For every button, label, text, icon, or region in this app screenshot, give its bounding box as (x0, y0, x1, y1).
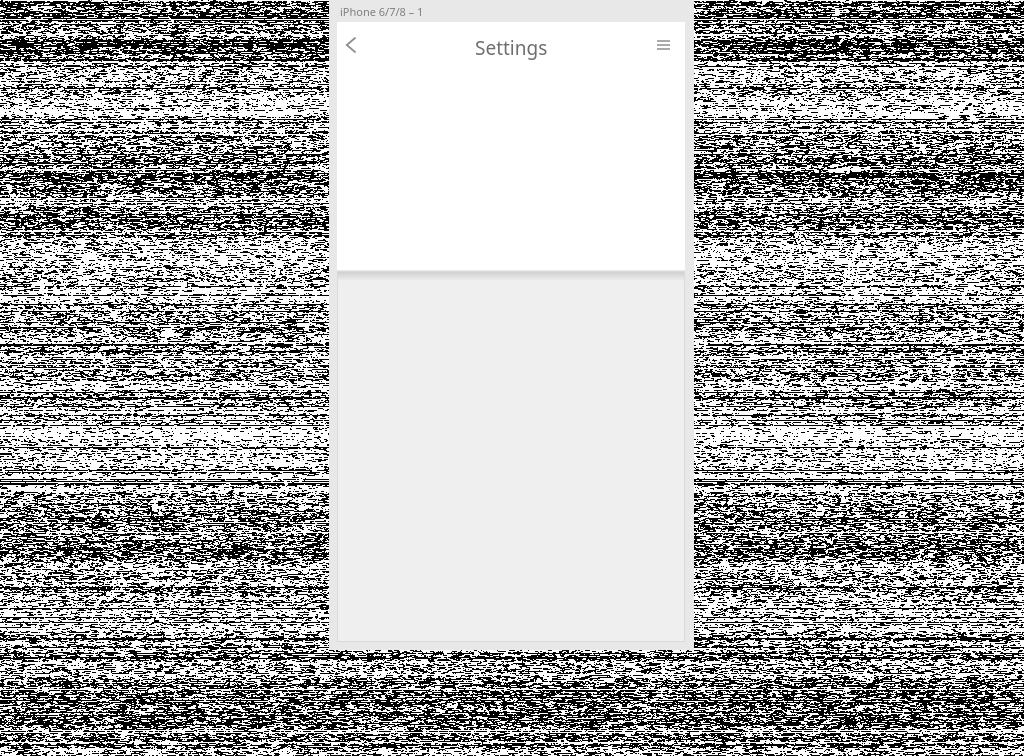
staticText: Settings (475, 35, 548, 61)
button[interactable] (649, 31, 677, 59)
button[interactable] (338, 31, 362, 59)
staticText: iPhone 6/7/8 – 1 (340, 4, 424, 19)
